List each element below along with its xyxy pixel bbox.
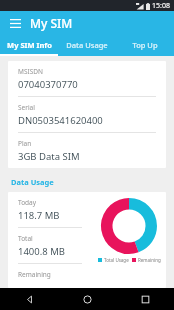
staticText: Data Usage xyxy=(66,40,108,50)
button[interactable]: Data Usage xyxy=(58,35,116,54)
button[interactable]: Home xyxy=(58,288,116,310)
button[interactable]: Back xyxy=(0,288,58,310)
staticText: 118.7 MB xyxy=(18,209,60,222)
staticText: Remaining xyxy=(18,270,51,279)
staticText: My SIM xyxy=(30,15,73,31)
staticText: Total Usage xyxy=(104,257,129,263)
staticText: Total xyxy=(18,234,33,243)
staticText: Data Usage xyxy=(11,177,54,187)
staticText: Today xyxy=(18,198,37,207)
staticText: Remaining xyxy=(138,257,161,263)
button[interactable]: Top Up xyxy=(116,35,174,54)
staticText: My SIM Info xyxy=(7,40,52,50)
staticText: MSISDN xyxy=(18,67,43,76)
button[interactable]: Open navigation drawer xyxy=(6,14,24,32)
staticText: 15:08 xyxy=(152,1,170,11)
staticText: 3GB Data SIM xyxy=(18,150,80,163)
button[interactable]: Recent apps xyxy=(116,288,174,310)
staticText: 1400.8 MB xyxy=(18,245,65,258)
staticText: DN0503541620400 xyxy=(18,114,103,127)
staticText: Plan xyxy=(18,139,32,148)
staticText: 07040370770 xyxy=(18,78,78,91)
staticText: Serial xyxy=(18,103,35,112)
staticText: Top Up xyxy=(132,40,158,50)
button[interactable]: My SIM Info xyxy=(0,35,58,54)
